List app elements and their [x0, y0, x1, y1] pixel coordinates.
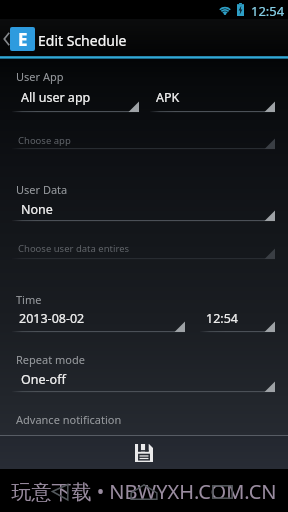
button[interactable]: Time 12:54 [200, 305, 275, 334]
button[interactable]: Choose app [12, 130, 275, 151]
staticText: Advance notification [16, 412, 122, 427]
staticText: Time [16, 292, 42, 307]
button[interactable]: Date 2013-08-02 [12, 305, 185, 334]
staticText: 12:54 [206, 310, 238, 327]
staticText: 玩意下载 • NBWYXH.COM.CN [0, 478, 288, 505]
button[interactable]: One-off [12, 366, 275, 394]
staticText: One-off [21, 371, 66, 388]
button[interactable]: Home [125, 480, 163, 504]
staticText: Choose user data entires [18, 242, 130, 255]
staticText: Repeat mode [16, 352, 85, 367]
staticText: APK [156, 89, 180, 106]
button[interactable]: Recents [203, 480, 241, 504]
button[interactable]: All user app [12, 84, 139, 114]
staticText: 2013-08-02 [19, 310, 85, 327]
staticText: User App [16, 69, 64, 84]
staticText: Choose app [18, 134, 71, 147]
staticText: Edit Schedule [38, 31, 127, 50]
staticText: E [18, 28, 28, 51]
button[interactable]: APK [150, 84, 275, 114]
staticText: 12:54 [251, 2, 285, 20]
button[interactable]: Navigate up [0, 19, 38, 56]
button[interactable]: Back [44, 480, 82, 504]
staticText: All user app [21, 89, 91, 106]
staticText: User Data [16, 182, 68, 197]
button[interactable]: Save [120, 436, 168, 469]
staticText: None [21, 201, 53, 218]
button[interactable]: None [12, 196, 275, 223]
button[interactable]: Choose user data entires [12, 238, 275, 261]
